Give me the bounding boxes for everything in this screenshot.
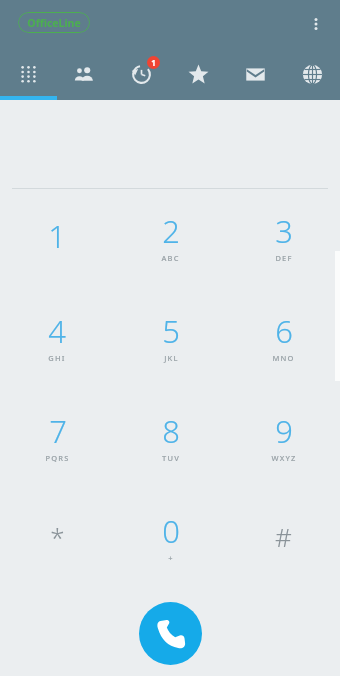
button[interactable]: 2 (114, 190, 227, 290)
button[interactable]: Web (283, 51, 340, 97)
staticText: 0 (162, 510, 180, 552)
staticText: TUV (162, 453, 180, 463)
staticText: 8 (162, 410, 180, 452)
button[interactable]: 9 (227, 390, 340, 490)
staticText: 9 (275, 410, 293, 452)
staticText: 1 (48, 215, 66, 257)
button[interactable]: 6 (227, 290, 340, 390)
staticText: 7 (49, 410, 67, 452)
staticText: OfficeLine (27, 16, 81, 30)
staticText: JKL (164, 353, 179, 363)
button[interactable]: 8 (114, 390, 227, 490)
staticText: 2 (162, 210, 180, 252)
button[interactable]: 7 (0, 390, 114, 490)
button[interactable]: * (0, 490, 114, 590)
button[interactable]: Dialpad (0, 51, 56, 97)
staticText: ABC (161, 253, 180, 263)
button[interactable]: OfficeLine (18, 12, 90, 33)
staticText: 5 (162, 310, 180, 352)
button[interactable]: # (227, 490, 340, 590)
staticText: * (50, 519, 65, 554)
staticText: 1 (151, 57, 156, 68)
staticText: MNO (272, 353, 295, 363)
staticText: 6 (275, 310, 293, 352)
button[interactable]: Recents (112, 51, 169, 97)
staticText: WXYZ (271, 453, 297, 463)
button[interactable]: Favorites (169, 51, 226, 97)
button[interactable]: Call (139, 602, 202, 665)
staticText: 3 (275, 210, 293, 252)
staticText: # (275, 519, 292, 554)
button[interactable]: 0 (114, 490, 227, 590)
staticText: + (168, 553, 174, 563)
button[interactable]: 4 (0, 290, 114, 390)
button[interactable]: 5 (114, 290, 227, 390)
button[interactable]: Contacts (56, 51, 112, 97)
button[interactable]: 3 (227, 190, 340, 290)
staticText: GHI (48, 353, 66, 363)
button[interactable]: More options (298, 6, 334, 42)
button[interactable]: Messages (226, 51, 283, 97)
staticText: PQRS (45, 453, 70, 463)
button[interactable]: 1 (0, 190, 114, 290)
staticText: DEF (275, 253, 293, 263)
staticText: 4 (48, 310, 66, 352)
